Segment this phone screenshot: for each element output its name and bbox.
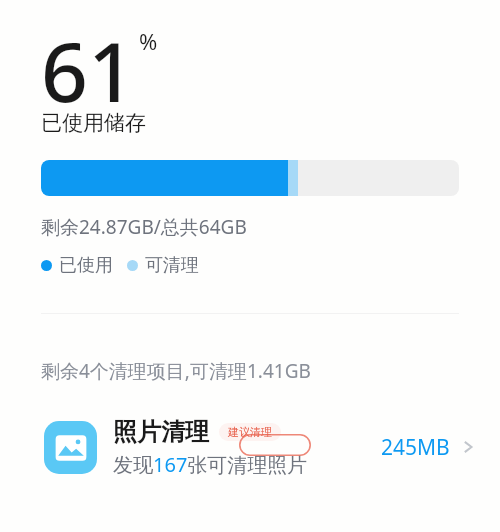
staticText: 已使用储存 (41, 110, 146, 136)
staticText: 可清理 (145, 254, 199, 277)
staticText: 建议清理 (228, 425, 272, 439)
staticText: 剩余4个清理项目,可清理1.41GB (41, 358, 311, 384)
staticText: 剩余24.87GB/总共64GB (41, 214, 247, 240)
staticText: 发现167张可清理照片 (113, 451, 308, 478)
staticText: 已使用 (59, 254, 113, 277)
button[interactable]: 照片清理 (0, 412, 500, 482)
staticText: 245MB (381, 433, 450, 462)
staticText: 照片清理 (113, 417, 209, 447)
staticText: 61 (41, 14, 135, 104)
other: Open photo cleanup (460, 439, 476, 455)
staticText: % (139, 26, 158, 56)
